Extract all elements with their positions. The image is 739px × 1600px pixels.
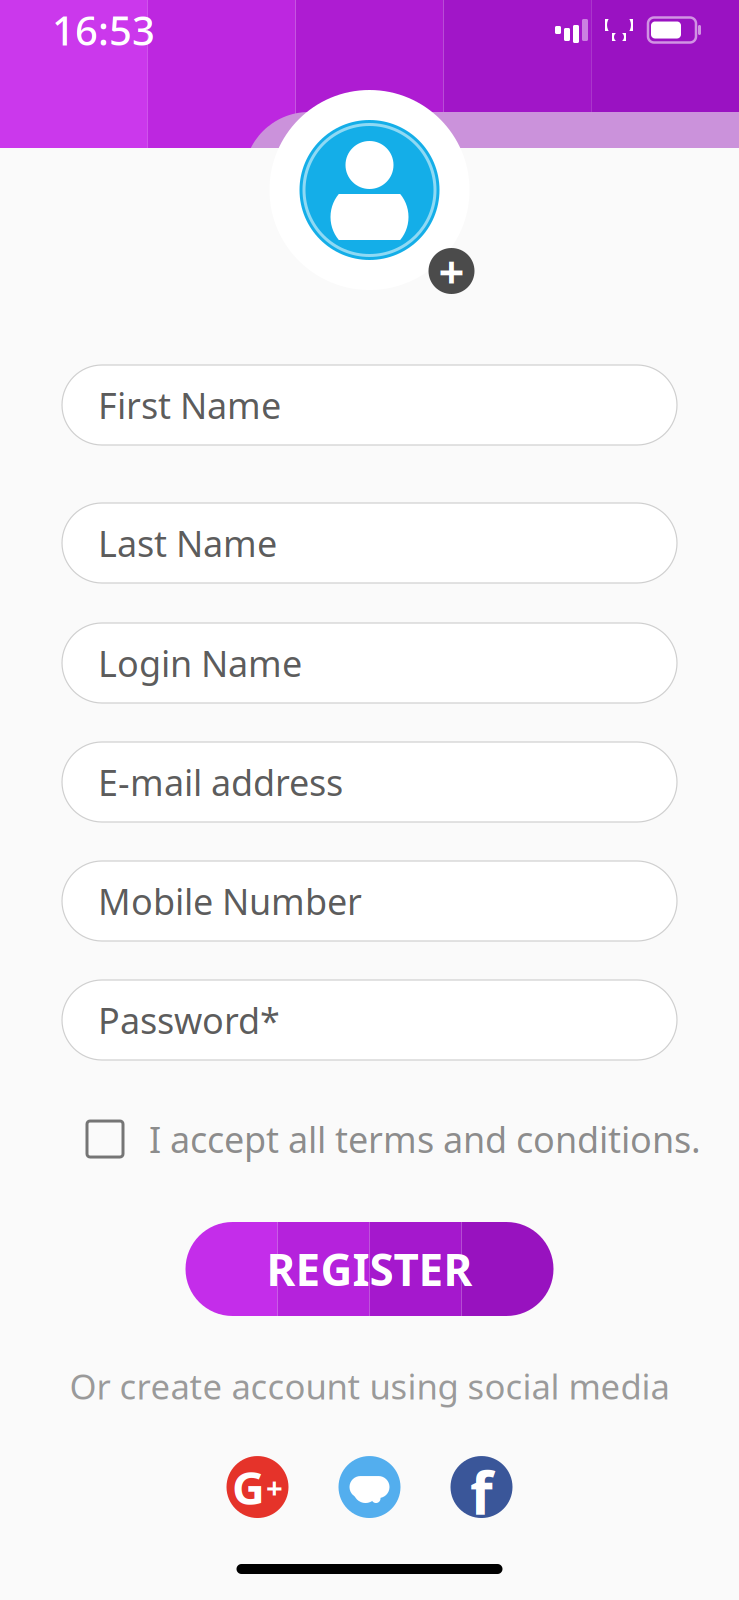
button[interactable]: REGISTER <box>185 1222 553 1316</box>
staticText: Or create account using social media <box>69 1363 669 1409</box>
staticText: Login Name <box>98 639 302 687</box>
staticText: G <box>232 1457 265 1517</box>
button[interactable]: Add profile photo <box>428 248 474 294</box>
button[interactable]: Login Name <box>62 623 677 703</box>
staticText: Mobile Number <box>98 877 362 925</box>
staticText: Password* <box>98 996 280 1044</box>
button[interactable]: Sign up with Facebook <box>450 1456 512 1518</box>
staticText: E-mail address <box>98 758 343 806</box>
staticText: f <box>470 1453 493 1531</box>
staticText: REGISTER <box>266 1240 472 1298</box>
button[interactable]: Last Name <box>62 503 677 583</box>
staticText: + <box>266 1468 283 1507</box>
staticText: 16:53 <box>52 3 155 56</box>
staticText: Last Name <box>98 519 277 567</box>
staticText: I accept all terms and conditions. <box>149 1115 701 1163</box>
button[interactable]: First Name <box>62 365 677 445</box>
button[interactable]: E-mail address <box>62 742 677 822</box>
button[interactable]: Sign up with Google <box>226 1456 288 1518</box>
button[interactable]: Mobile Number <box>62 861 677 941</box>
staticText: First Name <box>98 381 281 429</box>
staticText: + <box>438 241 464 301</box>
button[interactable]: I accept all terms and conditions. <box>0 1108 739 1170</box>
button[interactable]: Password* <box>62 980 677 1060</box>
button[interactable]: Sign up with Twitter <box>338 1456 400 1518</box>
